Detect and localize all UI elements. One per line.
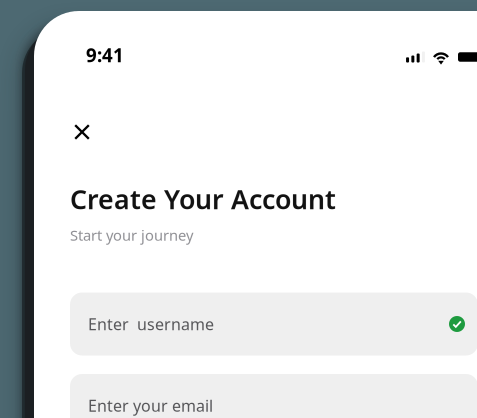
staticText: Create Your Account (70, 181, 336, 217)
staticText: Enter username (88, 313, 214, 335)
button[interactable]: Enter your email (70, 374, 477, 418)
button[interactable]: Enter username (70, 292, 477, 355)
staticText: 9:41 (86, 43, 124, 67)
staticText: Enter your email (88, 395, 213, 416)
button[interactable]: Close (60, 110, 104, 154)
staticText: Start your journey (70, 225, 193, 245)
